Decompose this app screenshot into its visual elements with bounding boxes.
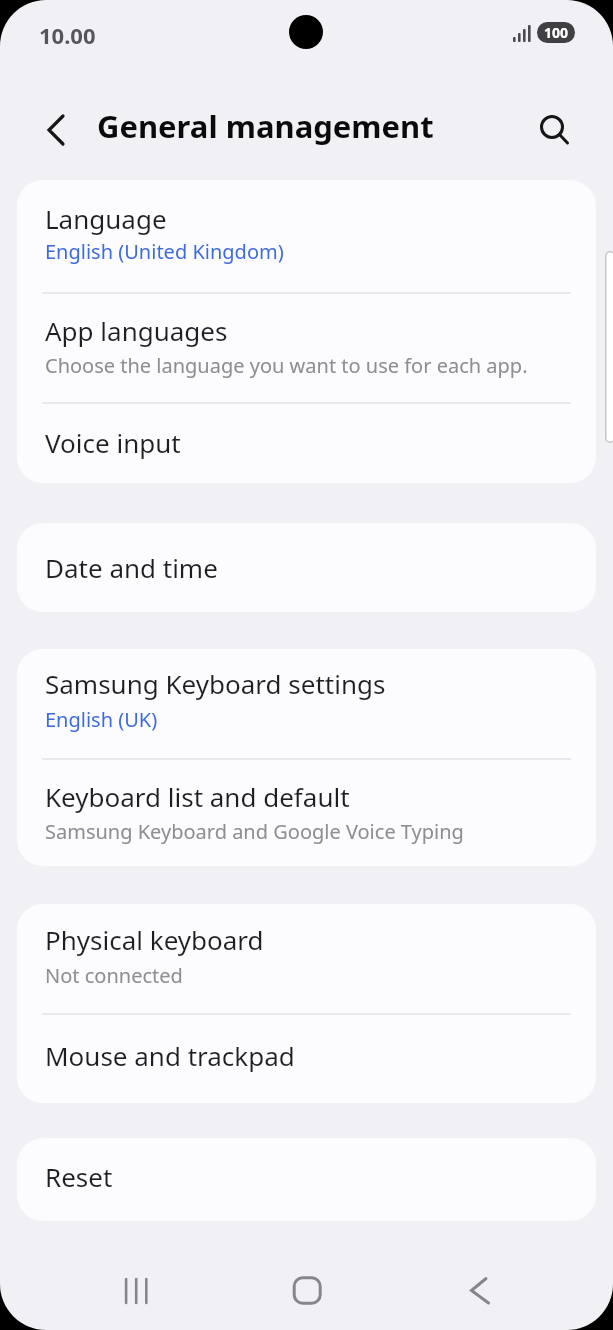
button[interactable]: Voice input xyxy=(17,404,596,483)
staticText: English (UK) xyxy=(45,706,158,733)
button[interactable] xyxy=(25,103,79,157)
staticText: Voice input xyxy=(45,425,181,460)
button[interactable]: App languages xyxy=(17,294,596,402)
staticText: Samsung Keyboard and Google Voice Typing xyxy=(45,818,464,845)
staticText: Samsung Keyboard settings xyxy=(45,666,386,701)
button[interactable]: Samsung Keyboard settings xyxy=(17,649,596,758)
button[interactable]: Physical keyboard xyxy=(17,904,596,1013)
staticText: Language xyxy=(45,201,167,236)
staticText: 100 xyxy=(544,23,569,42)
button[interactable]: Date and time xyxy=(17,523,596,612)
button[interactable]: Language xyxy=(17,180,596,292)
staticText: Physical keyboard xyxy=(45,922,264,957)
button[interactable]: Mouse and trackpad xyxy=(17,1015,596,1103)
staticText: App languages xyxy=(45,313,228,348)
staticText: 10.00 xyxy=(39,20,96,50)
staticText: Not connected xyxy=(45,962,183,989)
staticText: English (United Kingdom) xyxy=(45,238,284,265)
staticText: Keyboard list and default xyxy=(45,779,350,814)
button[interactable] xyxy=(528,102,582,156)
staticText: Date and time xyxy=(45,550,218,585)
staticText: Reset xyxy=(45,1159,113,1194)
staticText: Choose the language you want to use for … xyxy=(45,352,528,379)
staticText: Mouse and trackpad xyxy=(45,1038,295,1073)
button[interactable] xyxy=(450,1258,514,1322)
button[interactable]: Reset xyxy=(17,1138,596,1221)
button[interactable] xyxy=(105,1258,169,1322)
staticText: General management xyxy=(97,105,434,147)
button[interactable]: Keyboard list and default xyxy=(17,760,596,866)
button[interactable] xyxy=(274,1258,338,1322)
